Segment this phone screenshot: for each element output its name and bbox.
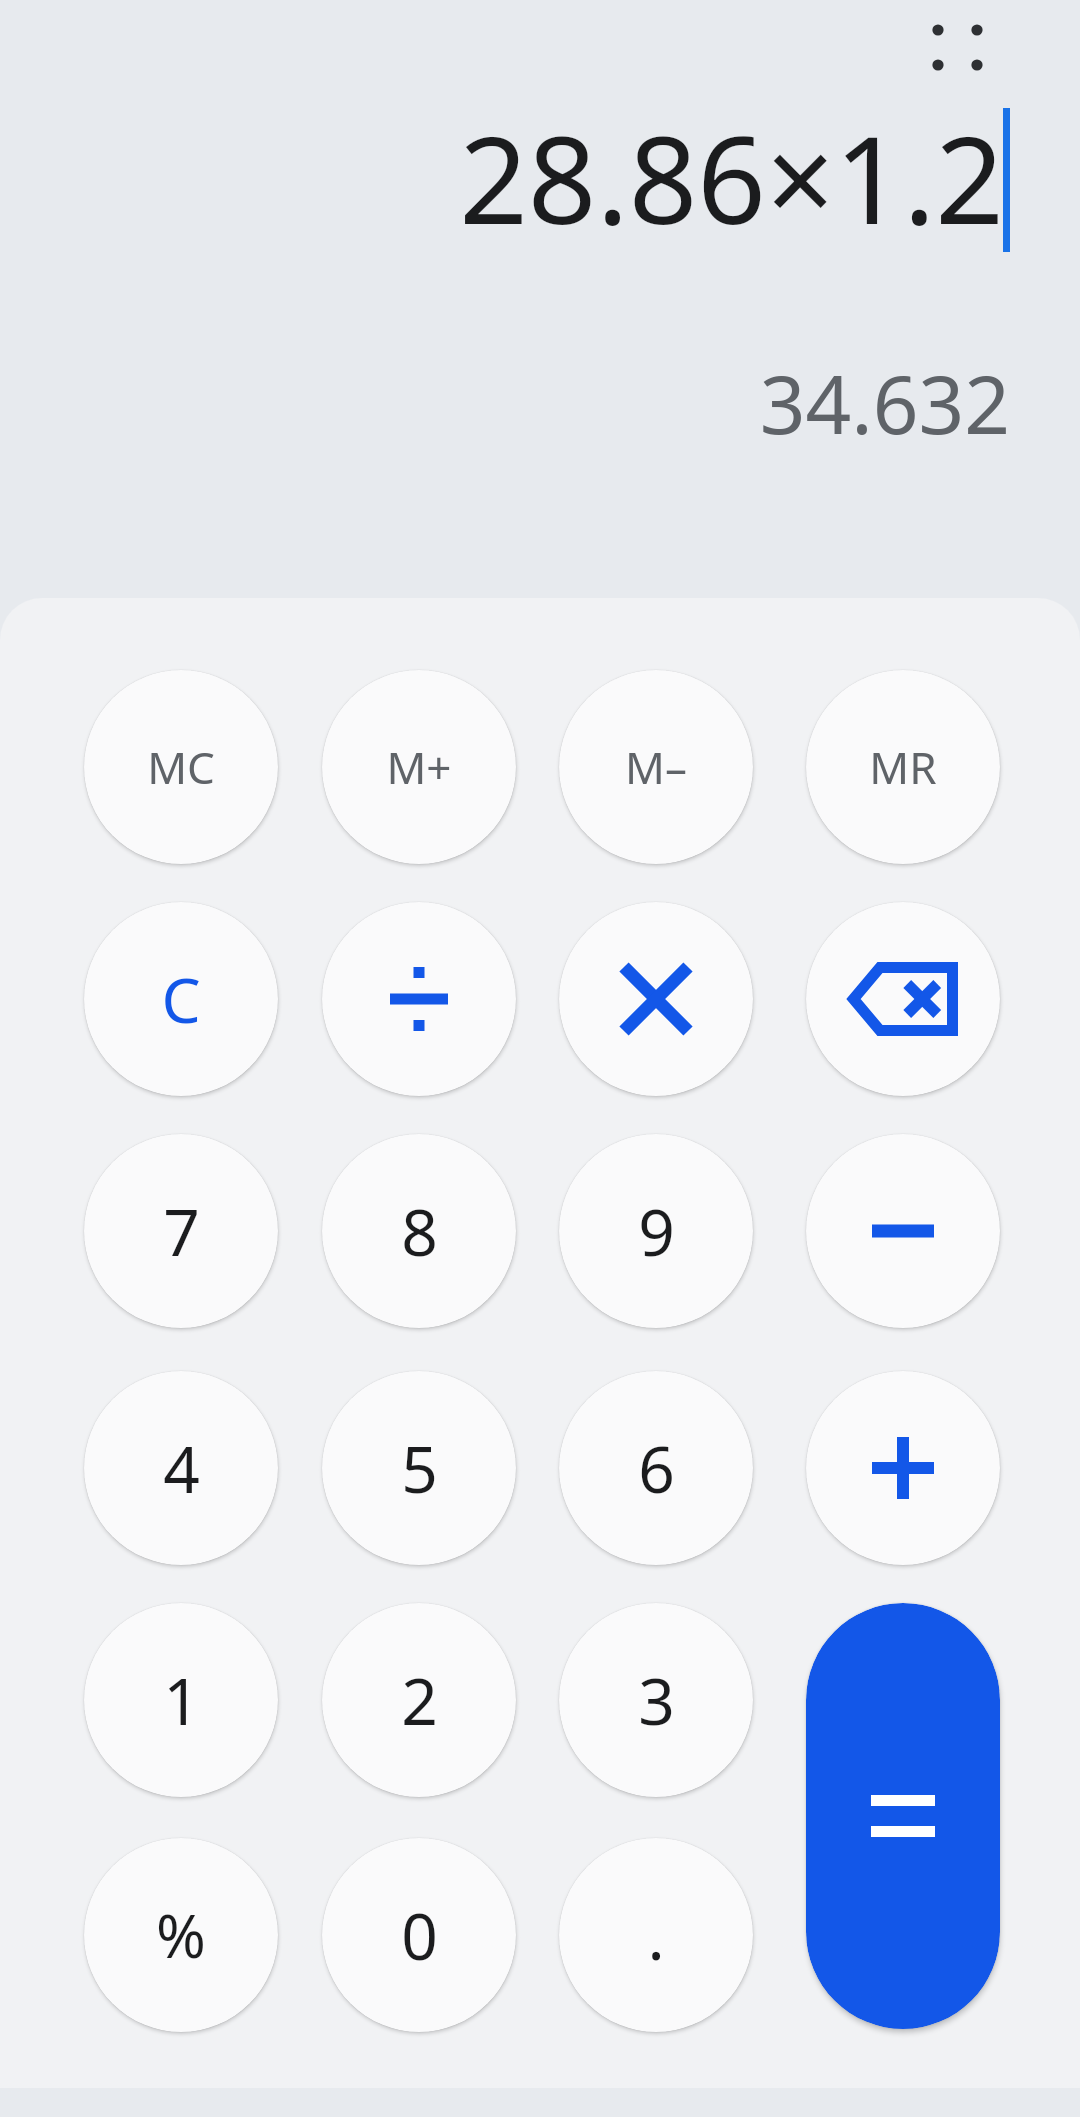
staticText: 8 (401, 1188, 438, 1275)
staticText: 1 (163, 1657, 200, 1744)
button[interactable]: . (559, 1838, 753, 2032)
button[interactable]: Multiply (559, 902, 753, 1096)
staticText: 0 (401, 1892, 438, 1979)
staticText: 7 (163, 1188, 200, 1275)
button[interactable]: Equals (806, 1603, 1000, 2029)
button[interactable]: 4 (84, 1371, 278, 1565)
staticText: % (156, 1894, 206, 1976)
staticText: 28.86×1.2 (459, 96, 1004, 259)
staticText: . (647, 1892, 665, 1979)
staticText: 6 (638, 1425, 675, 1512)
button[interactable]: 7 (84, 1134, 278, 1328)
button[interactable]: 1 (84, 1603, 278, 1797)
button[interactable]: 8 (322, 1134, 516, 1328)
button[interactable]: M– (559, 670, 753, 864)
staticText: M– (625, 737, 687, 797)
staticText: M+ (386, 737, 452, 797)
staticText: 5 (401, 1425, 438, 1512)
button[interactable]: Drag handle (908, 6, 1000, 92)
staticText: MC (147, 737, 215, 797)
button[interactable]: 5 (322, 1371, 516, 1565)
button[interactable]: 2 (322, 1603, 516, 1797)
button[interactable]: MC (84, 670, 278, 864)
staticText: 3 (638, 1657, 675, 1744)
staticText: C (161, 957, 201, 1041)
button[interactable]: M+ (322, 670, 516, 864)
button[interactable]: Minus (806, 1134, 1000, 1328)
staticText: MR (869, 737, 937, 797)
button[interactable]: Backspace (806, 902, 1000, 1096)
button[interactable]: 0 (322, 1838, 516, 2032)
button[interactable]: 9 (559, 1134, 753, 1328)
button[interactable]: 6 (559, 1371, 753, 1565)
staticText: 9 (638, 1188, 675, 1275)
button[interactable]: MR (806, 670, 1000, 864)
button[interactable]: Plus (806, 1371, 1000, 1565)
staticText: 34.632 (759, 348, 1010, 457)
staticText: 4 (163, 1425, 200, 1512)
button[interactable]: 3 (559, 1603, 753, 1797)
button[interactable]: % (84, 1838, 278, 2032)
staticText: 2 (401, 1657, 438, 1744)
button[interactable]: C (84, 902, 278, 1096)
button[interactable]: Divide (322, 902, 516, 1096)
